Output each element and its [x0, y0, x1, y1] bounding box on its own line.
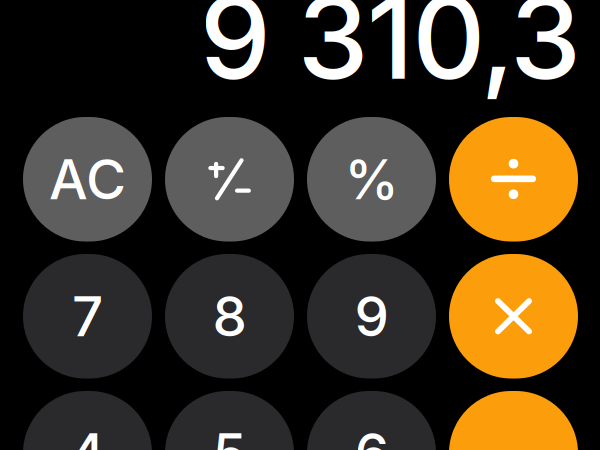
- button[interactable]: Divide: [449, 117, 578, 241]
- button[interactable]: Eight: [165, 254, 294, 378]
- button[interactable]: Subtract: [449, 391, 578, 450]
- staticText: 5: [212, 420, 246, 450]
- button[interactable]: Plus minus: [165, 117, 294, 241]
- button[interactable]: Percent: [307, 117, 436, 241]
- staticText: AC: [49, 146, 126, 212]
- staticText: 9: [354, 283, 388, 349]
- button[interactable]: Nine: [307, 254, 436, 378]
- staticText: %: [344, 146, 398, 212]
- staticText: 8: [212, 283, 246, 349]
- button[interactable]: Four: [23, 391, 152, 450]
- button[interactable]: Six: [307, 391, 436, 450]
- button[interactable]: Five: [165, 391, 294, 450]
- staticText: 4: [69, 420, 105, 450]
- button[interactable]: All clear: [23, 117, 152, 241]
- staticText: 7: [72, 283, 103, 349]
- staticText: 9 310,3: [200, 0, 581, 106]
- button[interactable]: Seven: [23, 254, 152, 378]
- staticText: 6: [354, 420, 388, 450]
- button[interactable]: Multiply: [449, 254, 578, 378]
